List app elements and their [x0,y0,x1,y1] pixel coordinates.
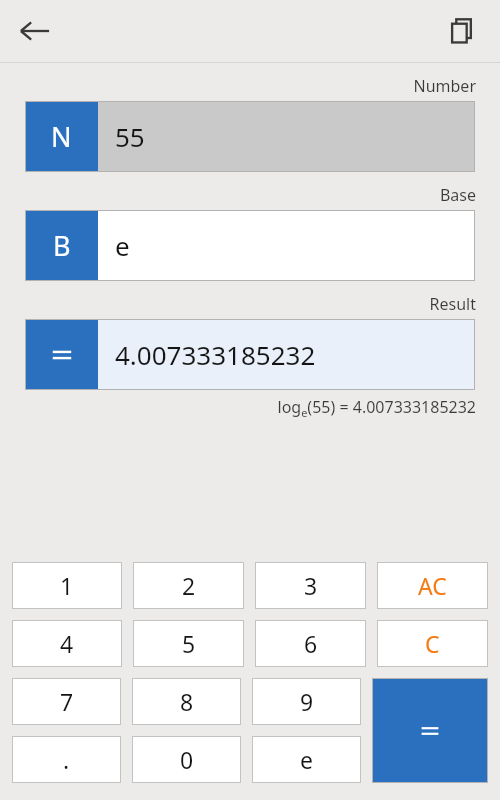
staticText: e [115,228,130,263]
button[interactable]: 8 [132,678,241,725]
staticText: Result [0,293,476,315]
button[interactable]: Equals [372,678,488,783]
button[interactable]: Back [8,4,62,58]
button[interactable]: B [25,210,475,281]
staticText: AC [418,570,447,601]
staticText: 7 [60,686,74,717]
button[interactable]: 3 [255,562,366,609]
staticText: 9 [300,686,314,717]
staticText: 0 [180,744,194,775]
button[interactable]: . [12,736,121,783]
staticText: 8 [180,686,194,717]
button[interactable]: 4 [12,620,122,667]
staticText: . [63,744,70,775]
staticText: B [53,227,71,264]
staticText: N [51,118,72,155]
button[interactable]: AC [377,562,488,609]
staticText: 5 [182,628,196,659]
button[interactable]: e [252,736,361,783]
staticText: Base [0,184,476,206]
button[interactable]: 5 [133,620,244,667]
staticText: 55 [115,119,145,154]
button[interactable]: 6 [255,620,366,667]
staticText: 2 [182,570,196,601]
button[interactable]: N [25,101,475,172]
button[interactable]: 2 [133,562,244,609]
button[interactable]: 0 [132,736,241,783]
button[interactable]: C [377,620,488,667]
button[interactable]: 1 [12,562,122,609]
staticText: C [425,628,440,659]
staticText: 3 [304,570,318,601]
staticText: 6 [304,628,318,659]
staticText: Number [0,75,476,97]
staticText: 1 [60,570,74,601]
staticText: loge(55) = 4.007333185232 [0,396,476,420]
staticText: 4.007333185232 [115,337,316,372]
staticText: e [300,744,313,775]
button[interactable]: 9 [252,678,361,725]
button[interactable]: Copy [436,5,488,57]
button[interactable]: 7 [12,678,121,725]
button[interactable]: 4.007333185232 [25,319,475,390]
staticText: 4 [60,628,74,659]
